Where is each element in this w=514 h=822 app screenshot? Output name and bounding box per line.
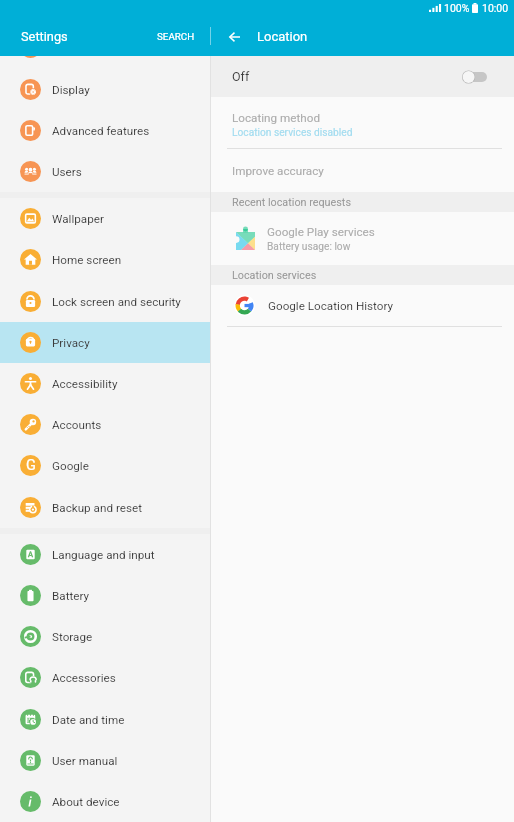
staticText: Language and input [52, 548, 155, 562]
button[interactable]: Accessories [0, 657, 210, 698]
button[interactable]: Google Location History [211, 285, 514, 326]
button[interactable]: G [0, 445, 210, 486]
staticText: Location services disabled [232, 127, 353, 139]
staticText: Lock screen and security [52, 295, 181, 309]
button[interactable]: Advanced features [0, 110, 210, 151]
button[interactable]: Improve accuracy [211, 149, 514, 192]
staticText: Locating method [232, 111, 320, 125]
staticText: Battery usage: low [267, 241, 351, 253]
staticText: Accounts [52, 418, 102, 432]
button[interactable]: Storage [0, 616, 210, 657]
button[interactable]: Off [211, 56, 514, 97]
button[interactable]: Device maintenance [0, 56, 210, 68]
staticText: Users [52, 165, 82, 179]
button[interactable]: About device [0, 781, 210, 822]
staticText: Recent location requests [232, 196, 351, 209]
button[interactable]: Battery [0, 575, 210, 616]
staticText: Advanced features [52, 124, 150, 138]
staticText: SEARCH [157, 31, 195, 42]
staticText: Backup and reset [52, 501, 142, 515]
staticText: Date and time [52, 713, 125, 727]
button[interactable]: Accounts [0, 404, 210, 445]
button[interactable]: Navigate up [222, 24, 247, 49]
button[interactable]: Users [0, 151, 210, 192]
staticText: Accessibility [52, 377, 118, 391]
staticText: G [26, 457, 36, 474]
staticText: Location services [232, 269, 317, 282]
staticText: Google [52, 459, 89, 473]
staticText: Display [52, 83, 90, 97]
staticText: User manual [52, 754, 118, 768]
staticText: Privacy [52, 336, 90, 350]
button[interactable]: Lock screen and security [0, 281, 210, 322]
button[interactable]: SEARCH [148, 19, 203, 53]
staticText: Improve accuracy [232, 164, 324, 178]
staticText: Accessories [52, 671, 116, 685]
staticText: About device [52, 795, 120, 809]
staticText: Google Play services [267, 225, 375, 239]
button[interactable]: Display [0, 69, 210, 110]
button[interactable]: Privacy [0, 322, 210, 363]
staticText: 100% [444, 2, 470, 14]
staticText: Settings [21, 29, 68, 44]
button[interactable]: Language and input [0, 534, 210, 575]
button[interactable]: User manual [0, 740, 210, 781]
staticText: Battery [52, 589, 90, 603]
staticText: Wallpaper [52, 212, 104, 226]
staticText: Location [257, 29, 308, 44]
button[interactable]: Wallpaper [0, 198, 210, 239]
button[interactable]: Home screen [0, 239, 210, 280]
button[interactable]: Accessibility [0, 363, 210, 404]
button[interactable]: Google Play services [211, 212, 514, 265]
button[interactable]: Date and time [0, 699, 210, 740]
staticText: 10:00 [482, 2, 509, 14]
button[interactable]: Locating method [211, 97, 514, 148]
staticText: Storage [52, 630, 93, 644]
button[interactable]: Backup and reset [0, 487, 210, 528]
staticText: Off [232, 69, 250, 84]
staticText: Google Location History [268, 299, 394, 313]
staticText: Home screen [52, 253, 122, 267]
